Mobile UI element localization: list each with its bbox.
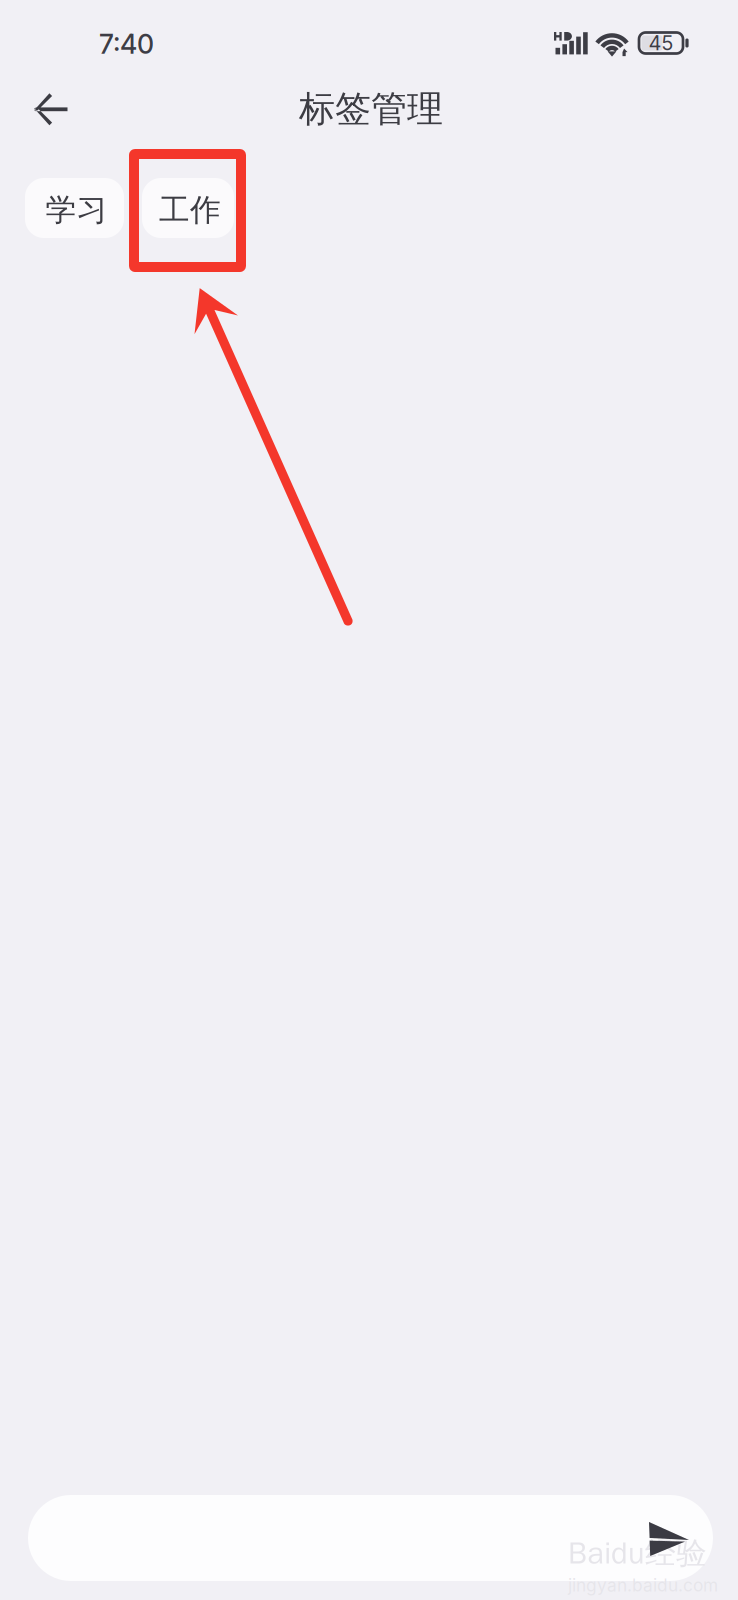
button[interactable]: 工作 xyxy=(142,178,234,238)
button[interactable]: 学习 xyxy=(25,178,124,238)
staticText: 学习 xyxy=(45,191,107,229)
button[interactable]: 返回 xyxy=(18,77,84,143)
staticText: 7:40 xyxy=(99,28,154,60)
staticText: 标签管理 xyxy=(299,86,443,132)
staticText: Baidu经验 xyxy=(568,1534,707,1573)
staticText: 45 xyxy=(648,31,673,55)
button[interactable]: 输入框 xyxy=(28,1495,713,1581)
staticText: jingyan.baidu.com xyxy=(568,1575,718,1596)
staticText: 工作 xyxy=(159,191,221,229)
